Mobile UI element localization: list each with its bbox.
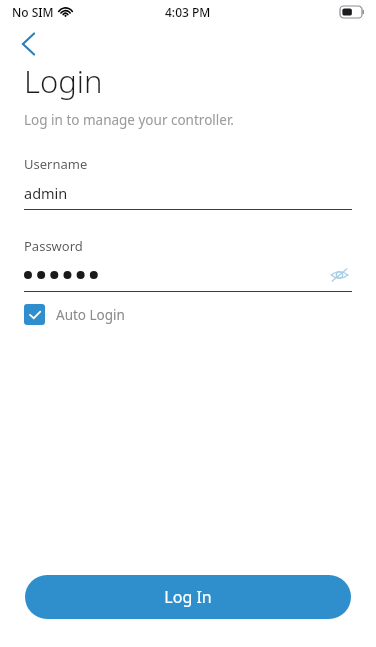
button[interactable]: Log In	[25, 575, 351, 619]
staticText: Password	[24, 237, 83, 255]
staticText: Log in to manage your controller.	[24, 111, 234, 129]
button[interactable]: Back	[12, 27, 46, 61]
button[interactable]: Auto Login	[24, 304, 125, 325]
staticText: Username	[24, 155, 88, 173]
button[interactable]: admin	[24, 181, 352, 205]
staticText: No SIM	[12, 4, 54, 20]
staticText: Auto Login	[56, 306, 125, 324]
staticText: Log In	[164, 586, 212, 608]
button[interactable]: Show password	[326, 263, 352, 287]
staticText: 4:03 PM	[165, 4, 211, 20]
staticText: Login	[24, 60, 103, 102]
button[interactable]: Show password	[24, 263, 352, 287]
staticText: admin	[24, 183, 68, 203]
